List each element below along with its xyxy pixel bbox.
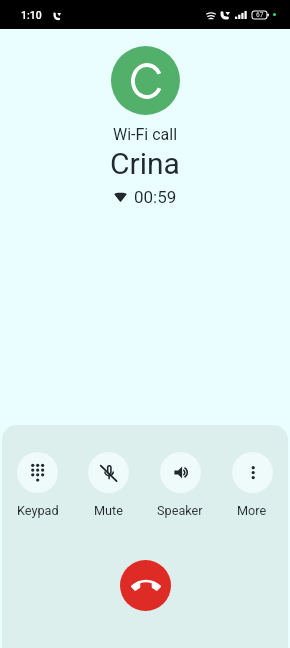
staticText: 00:59 bbox=[134, 187, 177, 207]
button[interactable]: End call bbox=[120, 560, 171, 611]
other: Keypad bbox=[17, 452, 58, 493]
staticText: Crina bbox=[0, 146, 290, 181]
staticText: 67 bbox=[256, 11, 264, 19]
staticText: 1:10 bbox=[21, 9, 42, 21]
staticText: Speaker bbox=[157, 503, 203, 518]
button[interactable]: Speaker bbox=[144, 452, 216, 518]
staticText: Keypad bbox=[17, 503, 59, 518]
other: Speaker bbox=[160, 452, 201, 493]
staticText: More bbox=[237, 503, 267, 518]
staticText: Wi-Fi call bbox=[0, 125, 290, 144]
button[interactable]: Mute bbox=[73, 452, 144, 518]
other: More options bbox=[232, 452, 273, 493]
button[interactable]: Keypad bbox=[2, 452, 73, 518]
button[interactable]: More options bbox=[216, 452, 288, 518]
other: Mute bbox=[88, 452, 129, 493]
staticText: Mute bbox=[94, 503, 123, 518]
